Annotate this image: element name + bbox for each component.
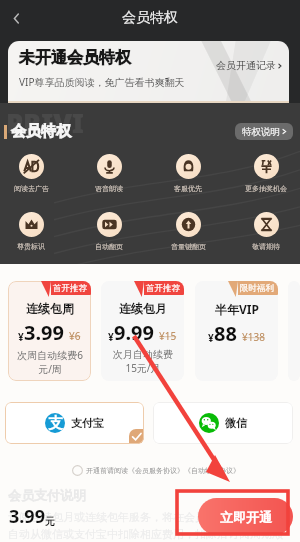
staticText: 元 xyxy=(45,515,55,528)
button[interactable]: 音量键翻页 xyxy=(164,212,212,251)
staticText: 会员特权 xyxy=(11,122,71,141)
button[interactable]: 特权说明 xyxy=(235,123,293,140)
button[interactable]: 语音朗读 xyxy=(85,154,133,193)
staticText: ¥6 xyxy=(69,329,81,343)
staticText: 3.99 xyxy=(9,504,45,529)
staticText: 更多抽奖机会 xyxy=(245,184,287,193)
button[interactable]: 敬请期待 xyxy=(242,212,290,251)
staticText: 微信 xyxy=(225,416,247,430)
staticText: ¥ xyxy=(208,331,214,345)
button[interactable]: Back xyxy=(0,2,32,34)
button[interactable]: 自动翻页 xyxy=(85,212,133,251)
button[interactable]: 连续包月 xyxy=(101,281,184,381)
staticText: 首开推荐 xyxy=(53,283,87,294)
button[interactable]: 支 xyxy=(5,402,144,444)
staticText: 会员开通记录 xyxy=(216,59,276,72)
staticText: 会员支付说明 xyxy=(8,487,86,503)
staticText: 尊贵标识 xyxy=(17,242,45,251)
button[interactable]: 半年VIP xyxy=(195,281,278,381)
staticText: 88 xyxy=(214,320,237,347)
staticText: 特权说明 xyxy=(242,126,280,138)
button[interactable]: 尊贵标识 xyxy=(7,212,55,251)
staticText: 自动翻页 xyxy=(95,242,123,251)
button[interactable]: 连续包周 xyxy=(8,281,91,381)
staticText: 连续包周 xyxy=(26,301,74,316)
staticText: 3.99 xyxy=(24,319,64,346)
staticText: ¥15 xyxy=(159,329,177,343)
staticText: 客服优先 xyxy=(174,184,202,193)
staticText: 会员特权 xyxy=(122,9,178,27)
button[interactable]: 开通前请阅读《会员服务协议》《自动续费协议》 xyxy=(72,465,300,476)
staticText: 阅读去广告 xyxy=(14,184,49,193)
button[interactable]: 立即开通 xyxy=(198,498,293,535)
button[interactable]: 更多抽奖机会 xyxy=(242,154,290,193)
staticText: 连续包月 xyxy=(119,301,167,316)
staticText: 次月自动续费 15元/月 xyxy=(113,348,173,375)
staticText: 9.99 xyxy=(114,319,154,346)
staticText: 语音朗读 xyxy=(95,184,123,193)
button[interactable]: 会员开通记录 xyxy=(216,59,284,72)
staticText: 开通前请阅读《会员服务协议》《自动续费协议》 xyxy=(86,466,240,475)
staticText: ¥138 xyxy=(242,330,265,344)
staticText: ¥ xyxy=(18,330,24,344)
button[interactable]: 微信 xyxy=(153,402,293,444)
staticText: 订阅连续包月或连续包年服务，将在会员到期前24小时内自动从微信或支付宝中扣除相应… xyxy=(8,509,292,542)
staticText: 限时福利 xyxy=(240,283,274,294)
button[interactable]: 阅读去广告 xyxy=(7,154,55,193)
staticText: 敬请期待 xyxy=(252,242,280,251)
staticText: 次周自动续费6 元/周 xyxy=(17,348,83,376)
staticText: VIP尊享品质阅读，免广告看书爽翻天 xyxy=(19,75,185,89)
staticText: 半年VIP xyxy=(215,301,259,317)
button[interactable]: 未开通会员特权 xyxy=(8,41,289,103)
staticText: 支付宝 xyxy=(71,416,104,430)
staticText: PRIVI xyxy=(6,104,84,141)
staticText: 首开推荐 xyxy=(146,283,180,294)
staticText: 支 xyxy=(48,414,63,433)
staticText: 音量键翻页 xyxy=(171,242,206,251)
staticText: ¥ xyxy=(108,330,114,344)
staticText: 立即开通 xyxy=(220,509,272,525)
staticText: 未开通会员特权 xyxy=(19,48,131,68)
button[interactable]: 客服优先 xyxy=(164,154,212,193)
